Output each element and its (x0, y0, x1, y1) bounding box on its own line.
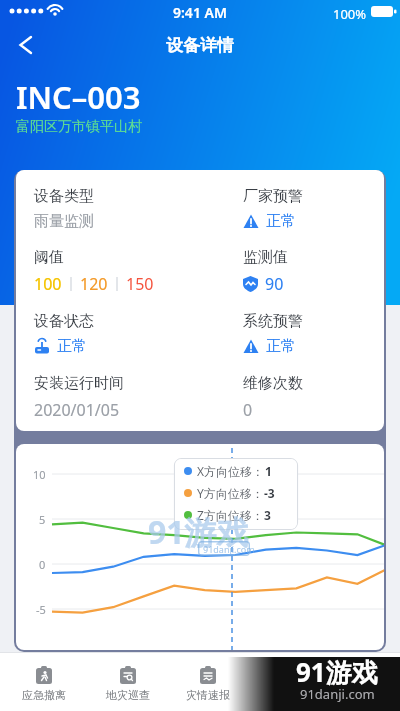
staticText: INC–003 (16, 76, 141, 118)
staticText: 0 (39, 557, 46, 572)
staticText: 正常 (266, 337, 296, 356)
staticText: Y方向位移： (197, 485, 264, 501)
staticText: 设备状态 (34, 312, 94, 331)
staticText: 100 (34, 273, 62, 295)
staticText: 0 (243, 399, 253, 421)
button[interactable]: 应急撤离 (4, 666, 84, 711)
staticText: 阈值 (34, 248, 64, 267)
staticText: 3 (264, 507, 271, 523)
button[interactable]: 地灾巡查 (88, 666, 168, 711)
staticText: 91danji.com (203, 543, 255, 555)
staticText: 应急撤离 (22, 688, 66, 702)
staticText: -3 (264, 485, 275, 501)
staticText: 10 (33, 467, 46, 482)
staticText: 富阳区万市镇平山村 (16, 118, 142, 136)
staticText: 5 (39, 512, 46, 527)
staticText: 监测值 (243, 248, 288, 267)
staticText: Z方向位移： (197, 507, 264, 523)
staticText: 系统预警 (243, 312, 303, 331)
staticText: 设备类型 (34, 187, 94, 206)
button[interactable] (8, 30, 42, 60)
staticText: 91游戏 (296, 654, 378, 690)
staticText: 120 (80, 273, 108, 295)
staticText: 地灾巡查 (106, 688, 150, 702)
staticText: 维修次数 (243, 374, 303, 393)
staticText: 厂家预警 (243, 187, 303, 206)
staticText: 2020/01/05 (34, 399, 120, 421)
staticText: 90 (265, 273, 284, 295)
staticText: 9:41 AM (173, 3, 227, 22)
staticText: 91danji.com (300, 685, 375, 703)
staticText: 91游戏 (148, 510, 249, 554)
staticText: 150 (126, 273, 154, 295)
button[interactable]: 灾情速报 (168, 666, 248, 711)
staticText: 灾情速报 (186, 688, 230, 702)
staticText: 100% (333, 5, 367, 23)
staticText: 安装运行时间 (34, 374, 124, 393)
staticText: 正常 (266, 212, 296, 231)
staticText: -5 (36, 602, 46, 617)
staticText: 1 (265, 463, 272, 479)
staticText: X方向位移： (197, 463, 265, 479)
staticText: 雨量监测 (34, 212, 94, 231)
staticText: 正常 (57, 337, 87, 356)
staticText: 设备详情 (166, 35, 234, 56)
